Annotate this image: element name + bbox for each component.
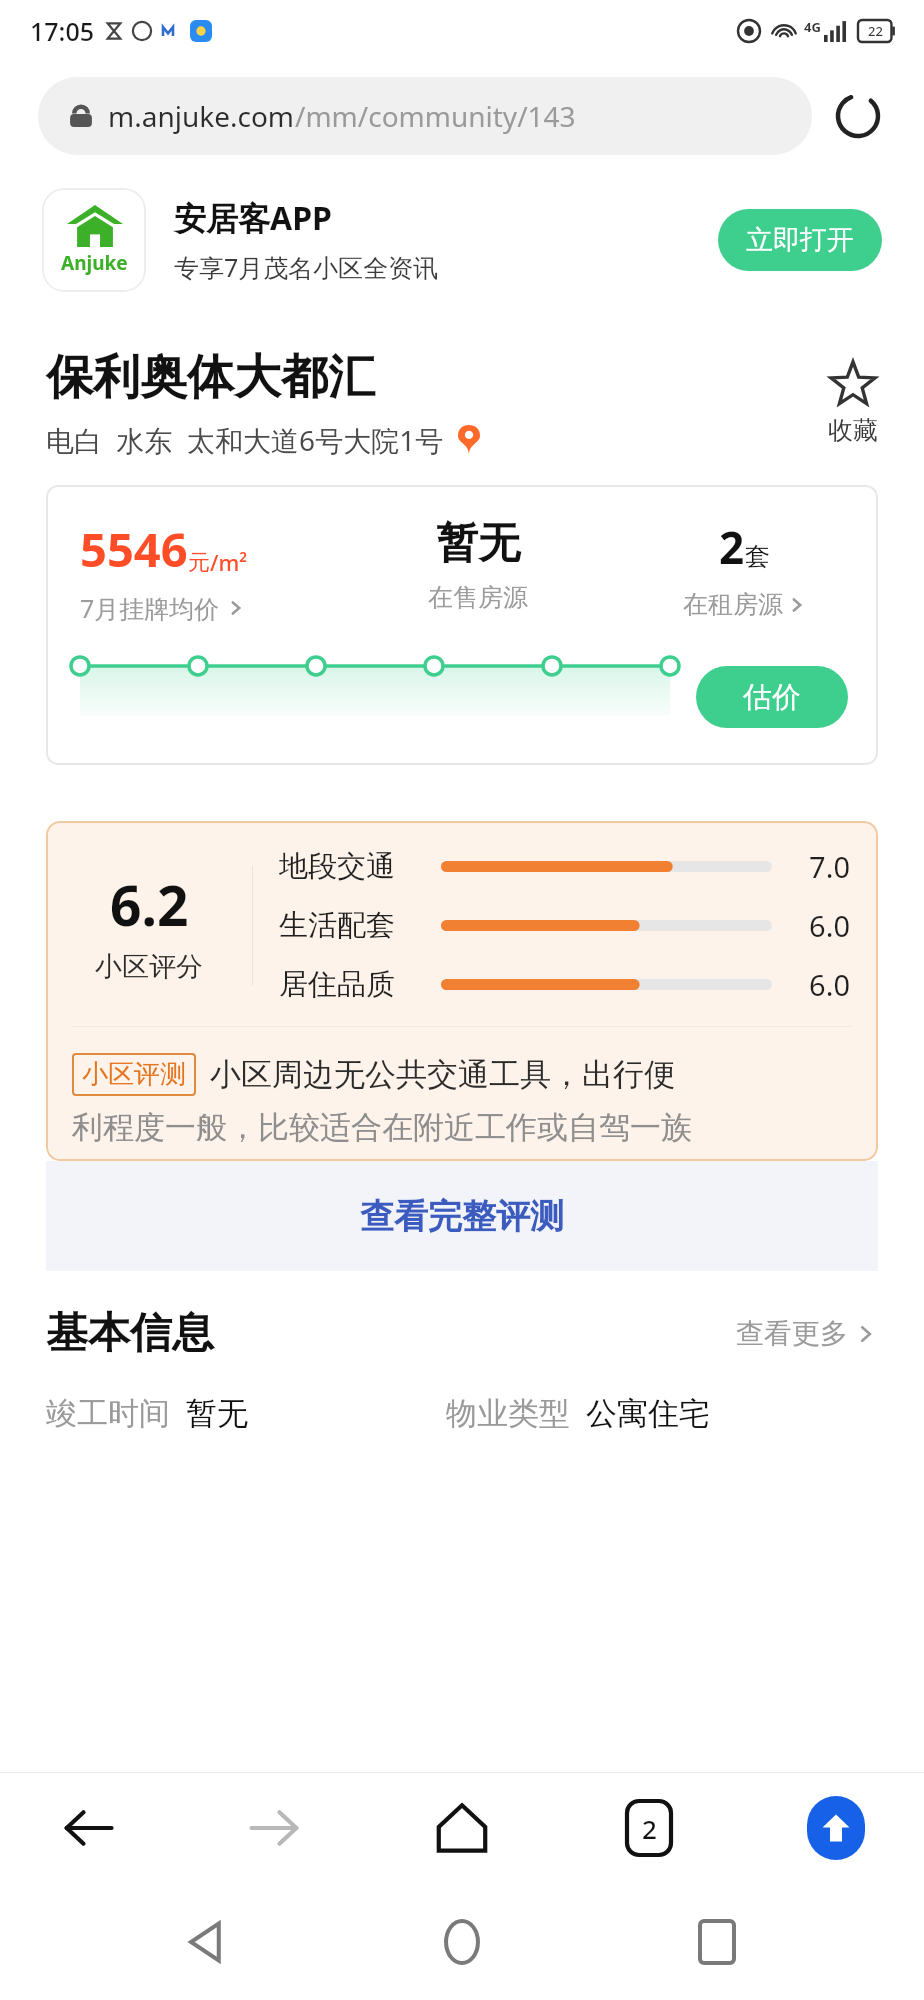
button[interactable]: 估价: [696, 666, 848, 728]
button[interactable]: Scroll to top: [788, 1780, 884, 1876]
staticText: 22: [868, 22, 883, 40]
staticText: 物业类型: [446, 1394, 570, 1433]
staticText: /m²: [210, 547, 248, 577]
button[interactable]: Home: [414, 1894, 510, 1990]
button[interactable]: Home: [414, 1780, 510, 1876]
staticText: 居住品质: [279, 966, 427, 1003]
button[interactable]: 立即打开: [718, 209, 882, 271]
button[interactable]: 2: [611, 517, 878, 620]
staticText: /mm/community/143: [295, 97, 576, 135]
button[interactable]: 收藏: [822, 361, 884, 446]
staticText: 基本信息: [46, 1307, 214, 1360]
button[interactable]: Recents: [669, 1894, 765, 1990]
button[interactable]: Back: [40, 1780, 136, 1876]
button[interactable]: 小区评测: [46, 1027, 878, 1161]
staticText: 2: [642, 1811, 657, 1846]
staticText: 安居客APP: [174, 196, 332, 240]
staticText: 17:05: [30, 14, 95, 48]
staticText: Anjuke: [61, 250, 128, 276]
staticText: 6.0: [788, 965, 850, 1004]
staticText: 小区周边无公共交通工具，出行便: [210, 1055, 675, 1094]
staticText: 2: [719, 517, 745, 577]
staticText: 竣工时间: [46, 1394, 170, 1433]
staticText: 7.0: [788, 847, 850, 886]
staticText: 保利奥体大都汇: [46, 348, 375, 407]
button[interactable]: Forward: [227, 1780, 323, 1876]
staticText: 利程度一般，比较适合在附近工作或自驾一族: [72, 1108, 692, 1147]
staticText: 5546: [80, 517, 188, 581]
staticText: 公寓住宅: [586, 1394, 710, 1433]
staticText: 地段交通: [279, 848, 427, 885]
button[interactable]: Tabs: [601, 1780, 697, 1876]
staticText: 收藏: [828, 415, 878, 446]
staticText: 查看更多: [736, 1316, 848, 1351]
staticText: 小区评测: [82, 1058, 186, 1091]
staticText: 估价: [743, 679, 801, 716]
staticText: 7月挂牌均价: [80, 591, 220, 625]
button[interactable]: 查看更多: [736, 1316, 878, 1351]
staticText: 小区评分: [95, 950, 203, 984]
staticText: m.anjuke.com: [108, 97, 295, 135]
button[interactable]: 查看完整评测: [46, 1161, 878, 1271]
staticText: 在租房源: [683, 589, 783, 620]
staticText: 专享7月茂名小区全资讯: [174, 250, 439, 284]
staticText: 暂无: [186, 1394, 248, 1433]
staticText: 在售房源: [428, 582, 528, 613]
button[interactable]: m.anjuke.com: [38, 77, 812, 155]
button[interactable]: Back: [159, 1894, 255, 1990]
staticText: 立即打开: [746, 223, 854, 257]
staticText: 生活配套: [279, 907, 427, 944]
staticText: 暂无: [436, 517, 520, 570]
staticText: 6.2: [110, 867, 189, 942]
staticText: 电白 水东 太和大道6号大院1号: [46, 421, 444, 459]
staticText: 元: [188, 549, 210, 577]
staticText: 6.0: [788, 906, 850, 945]
staticText: 套: [745, 541, 770, 572]
button[interactable]: Reload: [830, 88, 886, 144]
staticText: 查看完整评测: [360, 1195, 564, 1238]
button[interactable]: 5546: [80, 517, 344, 625]
staticText: 4G: [804, 18, 821, 36]
button[interactable]: Anjuke: [42, 188, 146, 292]
